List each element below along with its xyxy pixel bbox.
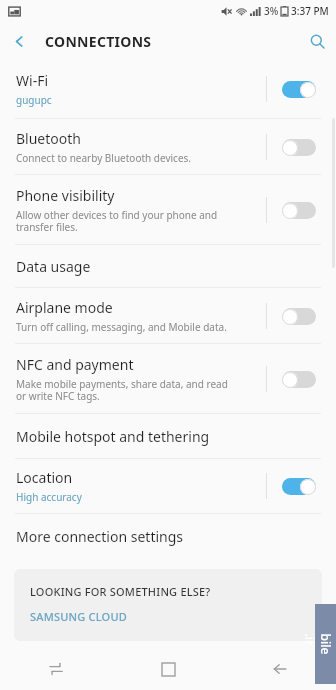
button[interactable]: Recents — [0, 648, 112, 690]
staticText: mobile.ir — [301, 633, 336, 654]
staticText: 3:37 PM — [291, 4, 329, 18]
button[interactable]: Home — [112, 648, 224, 690]
staticText: NFC and payment — [16, 355, 134, 374]
button[interactable]: Back — [0, 22, 38, 60]
button[interactable]: More connection settings — [0, 514, 336, 558]
button[interactable]: Location — [0, 459, 336, 513]
button[interactable]: On — [282, 81, 316, 98]
button[interactable]: Airplane mode — [0, 288, 336, 343]
button[interactable]: Bluetooth — [0, 119, 336, 174]
button[interactable]: On — [282, 478, 316, 495]
button[interactable]: Off — [282, 139, 316, 156]
staticText: Wi-Fi — [16, 71, 49, 90]
button[interactable]: Mobile hotspot and tethering — [0, 414, 336, 458]
staticText: Airplane mode — [16, 298, 113, 317]
button[interactable]: Off — [282, 371, 316, 388]
button[interactable]: Data usage — [0, 245, 336, 287]
button[interactable]: Search — [298, 22, 336, 60]
staticText: LOOKING FOR SOMETHING ELSE? — [30, 584, 211, 599]
staticText: Bluetooth — [16, 129, 81, 148]
staticText: Connect to nearby Bluetooth devices. — [16, 151, 192, 165]
button[interactable]: Off — [282, 202, 316, 219]
staticText: SAMSUNG CLOUD — [30, 609, 127, 624]
staticText: Mobile hotspot and tethering — [16, 427, 210, 446]
staticText: Phone visibility — [16, 186, 115, 205]
staticText: Turn off calling, messaging, and Mobile … — [16, 320, 227, 334]
button[interactable]: Off — [282, 308, 316, 325]
button[interactable]: Back — [224, 648, 336, 690]
staticText: 3% — [264, 4, 279, 18]
button[interactable]: LOOKING FOR SOMETHING ELSE? — [14, 569, 322, 641]
staticText: Data usage — [16, 257, 91, 276]
staticText: gugupc — [16, 93, 52, 107]
staticText: More connection settings — [16, 527, 184, 546]
button[interactable]: Wi-Fi — [0, 60, 336, 118]
staticText: High accuracy — [16, 490, 82, 504]
staticText: Location — [16, 468, 73, 487]
staticText: CONNECTIONS — [45, 32, 152, 51]
button[interactable]: NFC and payment — [0, 344, 336, 413]
button[interactable]: Phone visibility — [0, 175, 336, 244]
staticText: Make mobile payments, share data, and re… — [16, 377, 228, 403]
staticText: Allow other devices to find your phone a… — [16, 208, 218, 234]
